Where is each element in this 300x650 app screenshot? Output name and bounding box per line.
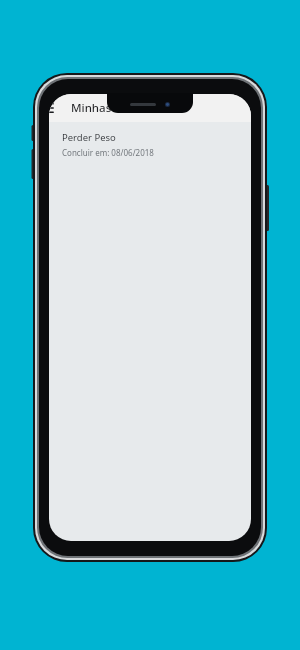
staticText: Minhas metas — [71, 100, 149, 116]
staticText: Perder Peso — [62, 131, 116, 144]
staticText: Concluir em: 08/06/2018 — [62, 147, 154, 158]
button[interactable]: Perder Peso — [49, 122, 251, 166]
button[interactable]: Open navigation menu — [50, 96, 64, 120]
